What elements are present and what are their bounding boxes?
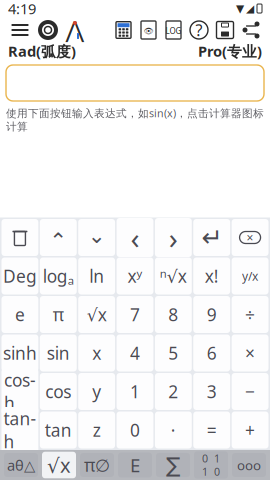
staticText: 6	[207, 341, 217, 364]
button[interactable]: Settings	[34, 20, 62, 40]
staticText: 使用下面按钮输入表达式，如sin(x)，点击计算器图标计算	[6, 106, 264, 133]
staticText: 7	[130, 303, 140, 326]
button[interactable]: Greek	[4, 453, 38, 477]
staticText: 4:19	[8, 0, 36, 18]
staticText: ∑	[166, 453, 180, 477]
button[interactable]: ln	[78, 257, 115, 294]
button[interactable]: Backspace	[232, 219, 268, 256]
button[interactable]: Help	[186, 20, 212, 40]
button[interactable]: Preview	[136, 20, 161, 40]
staticText: +	[245, 418, 255, 441]
staticText: 4	[130, 341, 140, 364]
button[interactable]: Share	[238, 20, 264, 40]
button[interactable]: Exponent	[118, 453, 152, 477]
button[interactable]: z	[78, 411, 115, 448]
button[interactable]: x	[78, 334, 115, 371]
button[interactable]: Calculate	[111, 20, 136, 40]
staticText: √x	[47, 452, 71, 478]
staticText: ·	[171, 418, 176, 441]
staticText: LOG	[165, 26, 181, 36]
button[interactable]: −	[232, 373, 268, 410]
button[interactable]: π	[40, 296, 77, 333]
button[interactable]: 8	[155, 296, 192, 333]
button[interactable]: Right	[155, 219, 192, 256]
button[interactable]: Enter	[193, 219, 230, 256]
button[interactable]: Expression input	[0, 59, 270, 101]
staticText: Pro(专业)	[198, 41, 262, 61]
button[interactable]: ×	[232, 334, 268, 371]
button[interactable]: y	[78, 373, 115, 410]
staticText: π	[53, 303, 64, 326]
staticText: 9	[207, 303, 217, 326]
staticText: 5	[168, 341, 178, 364]
staticText: tanh	[3, 407, 36, 453]
staticText: ‹	[130, 218, 139, 257]
staticText: z	[93, 418, 101, 441]
button[interactable]: Constants	[80, 453, 114, 477]
button[interactable]: e	[1, 296, 38, 333]
button[interactable]: Down	[78, 219, 115, 256]
button[interactable]: 4	[117, 334, 153, 371]
button[interactable]: Left	[117, 219, 153, 256]
button[interactable]: More	[232, 453, 266, 477]
staticText: cos	[45, 380, 71, 403]
staticText: √x	[87, 303, 107, 326]
button[interactable]: cosh	[1, 373, 38, 410]
button[interactable]: ⁿ√x	[155, 257, 192, 294]
button[interactable]: x!	[193, 257, 230, 294]
staticText: ↵	[201, 223, 222, 252]
button[interactable]: Delete all	[1, 219, 38, 256]
staticText: x	[92, 341, 101, 364]
button[interactable]: cos	[40, 373, 77, 410]
staticText: ÷	[245, 303, 255, 326]
staticText: x!	[205, 264, 219, 287]
button[interactable]: Roots	[42, 453, 76, 477]
button[interactable]: xʸ	[117, 257, 153, 294]
button[interactable]: Matrix	[194, 453, 228, 477]
staticText: ⁿ√x	[160, 264, 187, 287]
button[interactable]: logₐ	[40, 257, 77, 294]
staticText: xʸ	[127, 264, 142, 287]
staticText: 1	[130, 380, 140, 403]
button[interactable]: 6	[193, 334, 230, 371]
button[interactable]: sinh	[1, 334, 38, 371]
button[interactable]: 2	[155, 373, 192, 410]
button[interactable]: tanh	[1, 411, 38, 448]
staticText: ›	[169, 218, 178, 257]
button[interactable]: √x	[78, 296, 115, 333]
button[interactable]: =	[193, 411, 230, 448]
button[interactable]: 1	[117, 373, 153, 410]
button[interactable]: sin	[40, 334, 77, 371]
button[interactable]: 0	[117, 411, 153, 448]
staticText: ?	[195, 19, 202, 41]
button[interactable]: 5	[155, 334, 192, 371]
staticText: 2	[168, 380, 178, 403]
staticText: 👁	[143, 26, 153, 35]
button[interactable]: Up	[40, 219, 77, 256]
button[interactable]: ·	[155, 411, 192, 448]
button[interactable]: ÷	[232, 296, 268, 333]
button[interactable]: Geometry	[62, 20, 88, 40]
staticText: ×	[247, 229, 254, 245]
button[interactable]: tan	[40, 411, 77, 448]
staticText: 0	[130, 418, 140, 441]
staticText: ⌃	[49, 228, 67, 253]
staticText: 3	[207, 380, 217, 403]
staticText: 8	[168, 303, 178, 326]
staticText: cosh	[4, 368, 36, 414]
button[interactable]: 9	[193, 296, 230, 333]
button[interactable]: Deg	[1, 257, 38, 294]
button[interactable]: y/x	[232, 257, 268, 294]
button[interactable]: Menu	[6, 21, 34, 38]
button[interactable]: Log	[161, 20, 186, 40]
button[interactable]: 7	[117, 296, 153, 333]
staticText: logₐ	[43, 264, 74, 287]
staticText: Deg	[3, 264, 37, 287]
staticText: y	[92, 380, 101, 403]
button[interactable]: Sum	[156, 453, 190, 477]
button[interactable]: Save	[212, 20, 238, 40]
staticText: −	[245, 380, 255, 403]
staticText: E	[130, 453, 140, 477]
button[interactable]: 3	[193, 373, 230, 410]
button[interactable]: +	[232, 411, 268, 448]
